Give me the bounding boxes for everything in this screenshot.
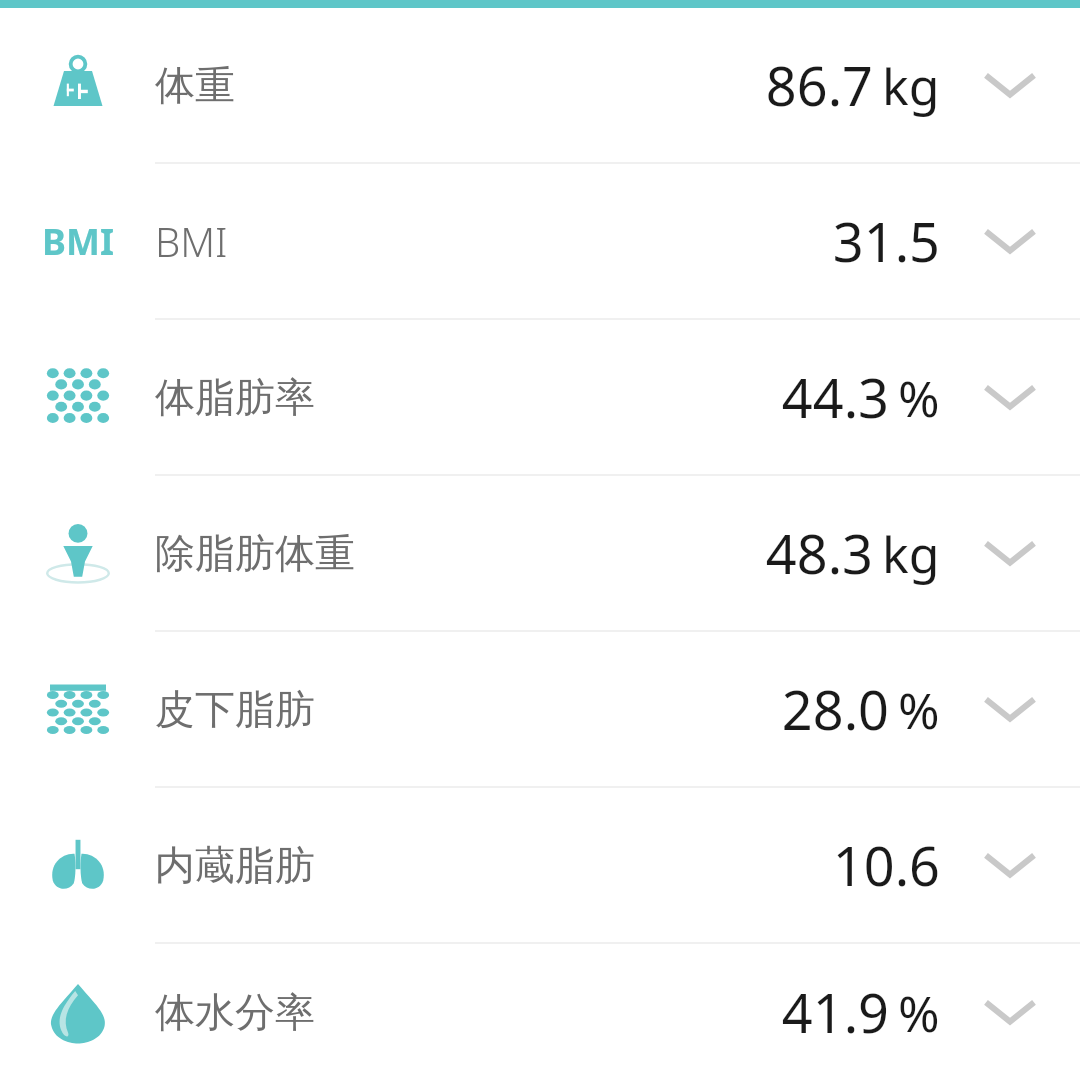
button[interactable]: 内蔵脂肪 [0, 788, 1080, 942]
button[interactable]: 体重 [0, 8, 1080, 162]
staticText: kg [882, 52, 940, 120]
button[interactable]: Expand 内蔵脂肪 [940, 788, 1080, 942]
staticText: % [898, 979, 940, 1047]
button[interactable]: 除脂肪体重 [0, 476, 1080, 630]
staticText: 31.5 [832, 204, 940, 278]
staticText: BMI [42, 217, 114, 266]
staticText: 48.3 [765, 516, 873, 590]
button[interactable]: 皮下脂肪 [0, 632, 1080, 786]
staticText: 28.0 [781, 672, 889, 746]
button[interactable]: 体脂肪率 [0, 320, 1080, 474]
staticText: 体水分率 [155, 987, 315, 1037]
button[interactable]: Expand 皮下脂肪 [940, 632, 1080, 786]
button[interactable]: BMI [0, 164, 1080, 318]
button[interactable]: Expand BMI [940, 164, 1080, 318]
staticText: kg [882, 520, 940, 588]
button[interactable]: Expand 体脂肪率 [940, 320, 1080, 474]
staticText: 44.3 [781, 360, 889, 434]
staticText: 内蔵脂肪 [155, 840, 315, 890]
button[interactable]: Expand 体水分率 [940, 944, 1080, 1080]
staticText: 10.6 [832, 828, 940, 902]
staticText: BMI [155, 214, 228, 268]
staticText: 86.7 [765, 48, 873, 122]
staticText: 体重 [155, 60, 235, 110]
button[interactable]: 体水分率 [0, 944, 1080, 1080]
staticText: % [898, 364, 940, 432]
staticText: 41.9 [781, 975, 889, 1049]
staticText: 皮下脂肪 [155, 684, 315, 734]
button[interactable]: Expand 除脂肪体重 [940, 476, 1080, 630]
staticText: % [898, 676, 940, 744]
button[interactable]: Expand 体重 [940, 8, 1080, 162]
staticText: 除脂肪体重 [155, 528, 355, 578]
staticText: 体脂肪率 [155, 372, 315, 422]
